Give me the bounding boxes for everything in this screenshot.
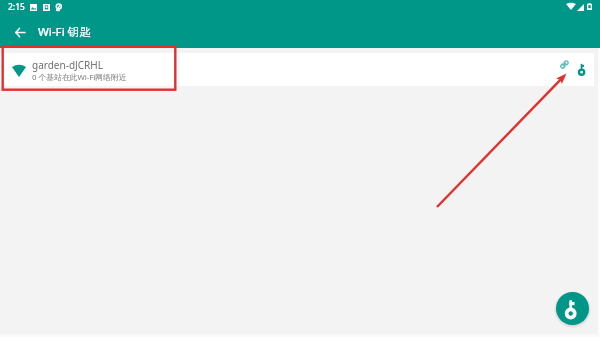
button[interactable]: Back (6, 18, 34, 46)
button[interactable]: Share (553, 53, 575, 75)
button[interactable]: garden-dJCRHL (0, 53, 594, 86)
staticText: Wi-Fi 钥匙 (38, 24, 91, 40)
staticText: 2:15 (8, 1, 25, 13)
staticText: 0 个基站在此Wi-Fi网络附近 (32, 72, 127, 83)
button[interactable]: Add Wi-Fi key (556, 292, 589, 325)
button[interactable]: Show password key (573, 58, 591, 80)
staticText: garden-dJCRHL (32, 58, 103, 72)
